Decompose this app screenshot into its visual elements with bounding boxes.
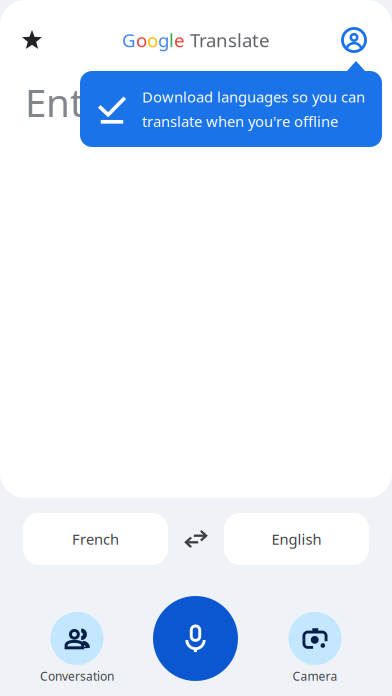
button[interactable]: Voice input xyxy=(153,596,238,681)
button[interactable]: French xyxy=(23,513,168,565)
button[interactable]: Saved xyxy=(10,18,54,62)
button[interactable]: Account xyxy=(338,18,382,62)
button[interactable]: Conversation xyxy=(22,612,132,687)
staticText: o xyxy=(136,28,147,52)
button[interactable]: Swap languages xyxy=(168,513,224,565)
staticText: l xyxy=(169,28,174,52)
staticText: Camera xyxy=(292,668,337,684)
staticText: French xyxy=(72,529,119,549)
button[interactable]: English xyxy=(224,513,369,565)
staticText: g xyxy=(158,28,169,52)
staticText: Conversation xyxy=(40,668,114,684)
staticText: Translate xyxy=(185,28,270,52)
button[interactable]: Camera xyxy=(260,612,370,687)
staticText: English xyxy=(271,529,321,549)
staticText: translate when you're offline xyxy=(142,111,338,131)
staticText: o xyxy=(147,28,158,52)
staticText: Enter text xyxy=(25,76,201,128)
staticText: G xyxy=(122,28,136,52)
staticText: e xyxy=(174,28,185,52)
staticText: Download languages so you can xyxy=(142,87,365,106)
